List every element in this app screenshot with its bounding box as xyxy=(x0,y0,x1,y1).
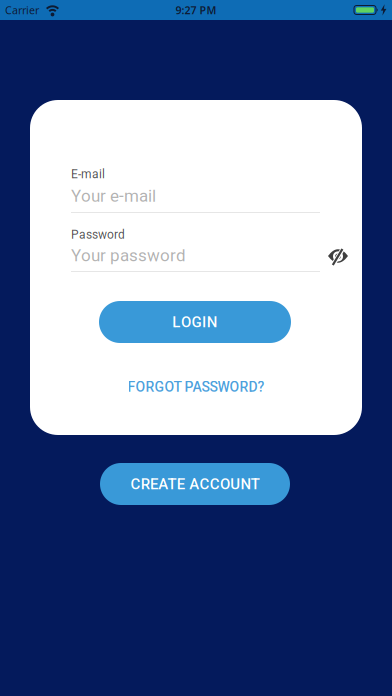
staticText: FORGOT PASSWORD? xyxy=(127,379,264,395)
staticText: 9:27 PM xyxy=(175,3,216,17)
button[interactable]: FORGOT PASSWORD? xyxy=(30,378,362,396)
button[interactable]: CREATE ACCOUNT xyxy=(100,463,290,505)
staticText: Your password xyxy=(71,245,186,265)
staticText: E-mail xyxy=(71,167,105,181)
staticText: Your e-mail xyxy=(71,186,156,206)
button[interactable]: LOGIN xyxy=(99,301,291,343)
button[interactable]: Show password xyxy=(326,244,350,268)
button[interactable]: Your e-mail xyxy=(71,186,320,213)
staticText: CREATE ACCOUNT xyxy=(130,475,260,493)
button[interactable]: Your password xyxy=(71,245,320,272)
staticText: Carrier xyxy=(5,3,39,17)
staticText: LOGIN xyxy=(172,313,218,331)
staticText: Password xyxy=(71,227,125,242)
